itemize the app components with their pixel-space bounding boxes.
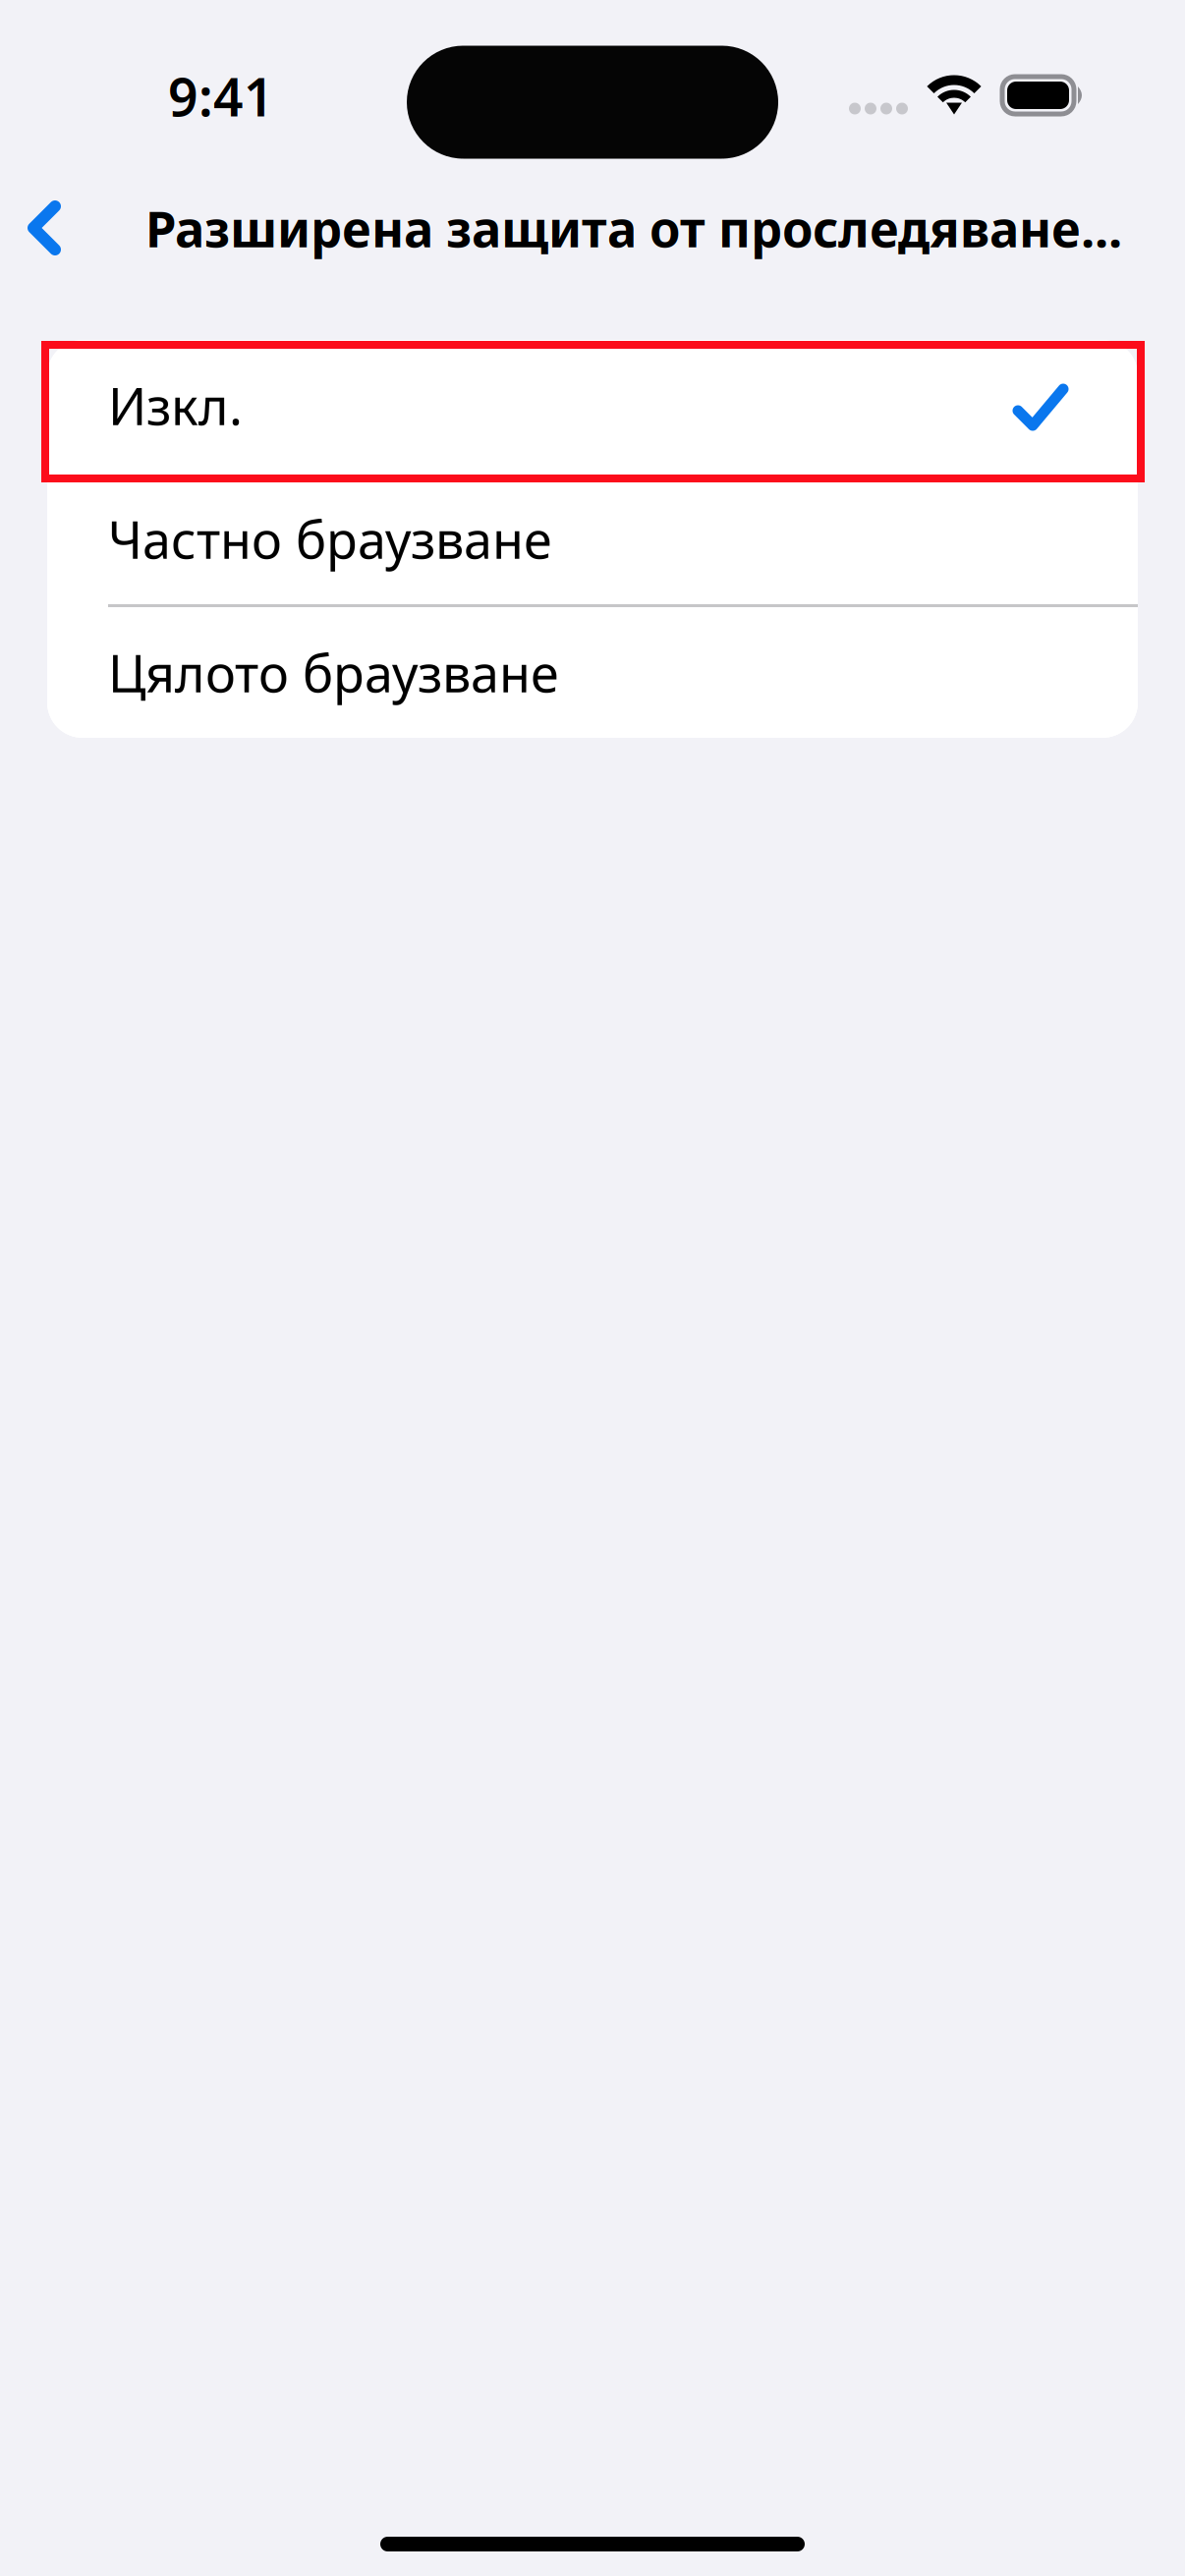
staticText: Изкл. [108, 371, 243, 439]
staticText: 9:41 [168, 61, 274, 131]
button[interactable]: Изкл. [47, 340, 1138, 471]
staticText: Цялото браузване [108, 639, 559, 706]
staticText: Разширена защита от проследяване... [145, 195, 1122, 261]
button[interactable]: Цялото браузване [47, 607, 1138, 738]
staticText: Частно браузване [108, 505, 552, 573]
button[interactable]: Back [0, 179, 86, 277]
button[interactable]: Частно браузване [47, 474, 1138, 604]
